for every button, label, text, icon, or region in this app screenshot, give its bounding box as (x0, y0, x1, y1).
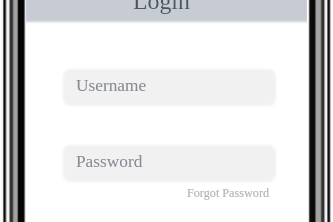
staticText: Username (76, 76, 147, 95)
button[interactable]: Forgot Password (187, 186, 270, 200)
button[interactable]: Password (63, 145, 276, 182)
staticText: Login (133, 0, 190, 14)
staticText: Forgot Password (187, 186, 270, 200)
button[interactable]: Username (63, 69, 276, 106)
staticText: Password (76, 152, 143, 171)
